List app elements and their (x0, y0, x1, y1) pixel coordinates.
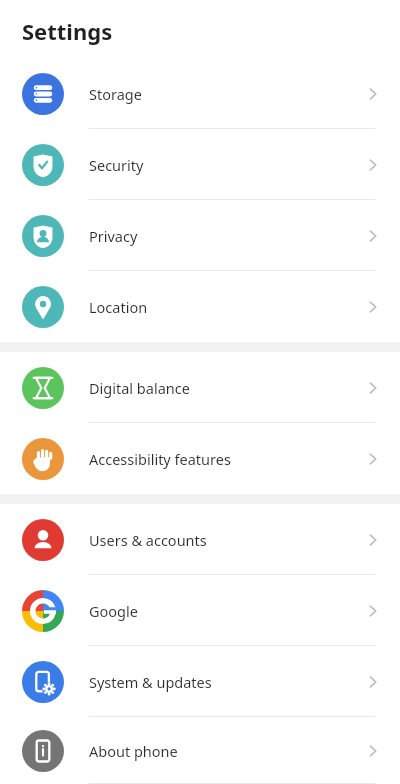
button[interactable]: Location (0, 271, 400, 342)
staticText: About phone (89, 741, 178, 761)
button[interactable]: Privacy (0, 200, 400, 271)
staticText: Settings (22, 16, 113, 46)
staticText: Users & accounts (89, 530, 207, 550)
button[interactable]: Users & accounts (0, 504, 400, 575)
staticText: Storage (89, 84, 142, 104)
staticText: Location (89, 297, 148, 317)
button[interactable]: Google (0, 575, 400, 646)
button[interactable]: System & updates (0, 646, 400, 717)
staticText: Security (89, 155, 144, 175)
button[interactable]: Security (0, 129, 400, 200)
staticText: System & updates (89, 672, 212, 692)
button[interactable]: Storage (0, 58, 400, 129)
button[interactable]: Accessibility features (0, 423, 400, 494)
button[interactable]: About phone (0, 717, 400, 784)
button[interactable]: Digital balance (0, 352, 400, 423)
staticText: Google (89, 601, 138, 621)
staticText: Digital balance (89, 378, 190, 398)
staticText: Accessibility features (89, 449, 231, 469)
staticText: Privacy (89, 226, 138, 246)
